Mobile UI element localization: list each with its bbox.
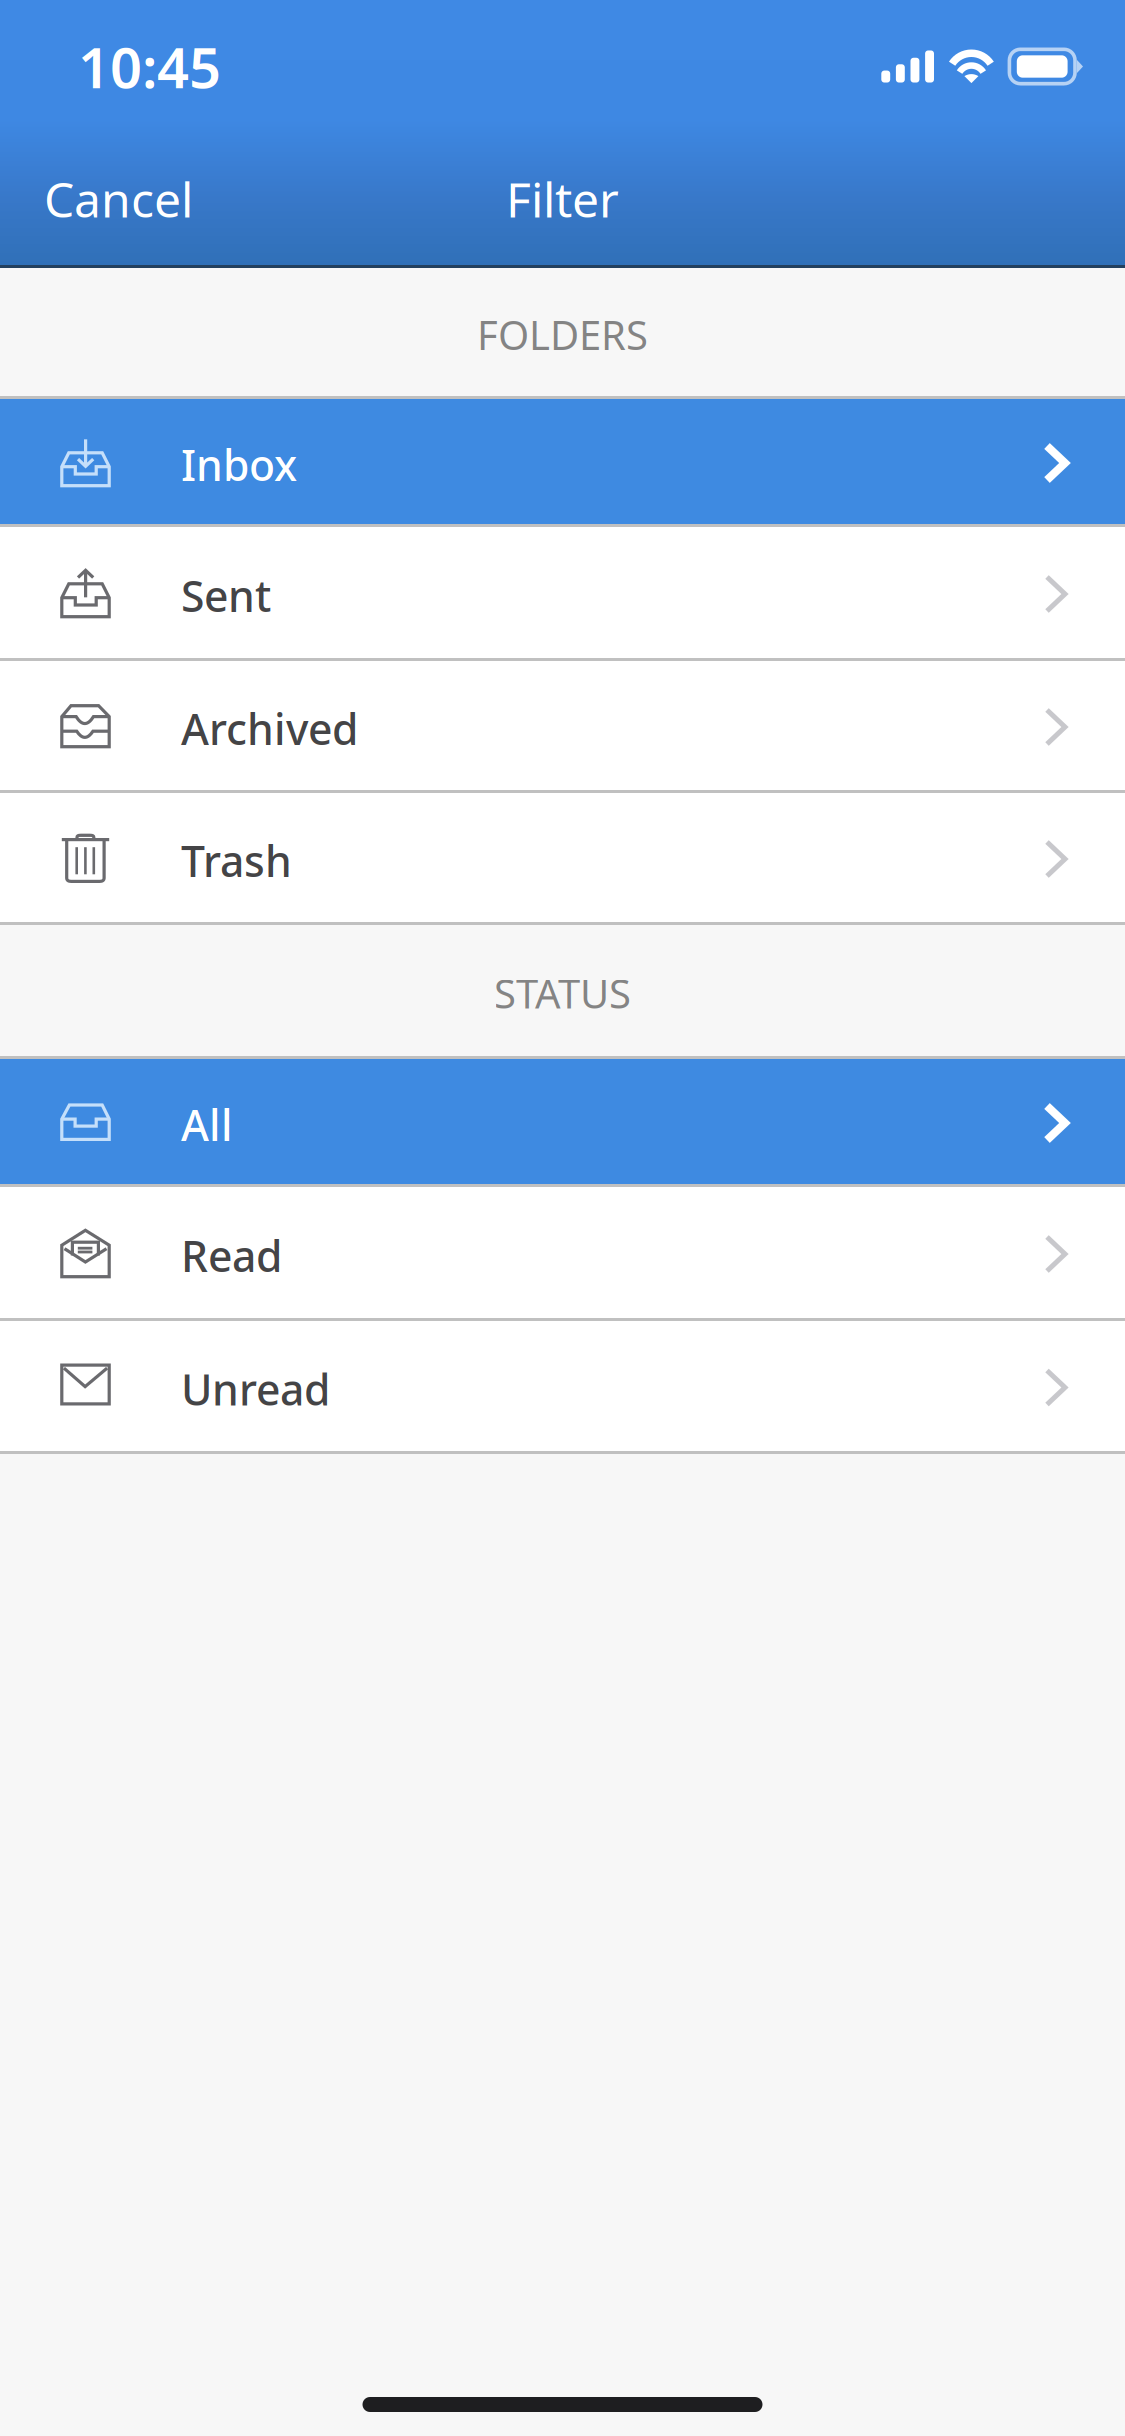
button[interactable]: Cancel	[0, 133, 225, 265]
staticText: Cancel	[44, 167, 193, 231]
staticText: Read	[181, 1227, 282, 1284]
button[interactable]: All	[0, 1059, 1125, 1184]
button[interactable]: Unread	[0, 1321, 1125, 1451]
button[interactable]: Sent	[0, 527, 1125, 658]
staticText: All	[181, 1096, 233, 1153]
staticText: STATUS	[494, 966, 631, 1019]
button[interactable]: Archived	[0, 661, 1125, 790]
staticText: Unread	[181, 1361, 330, 1417]
button[interactable]: Trash	[0, 793, 1125, 922]
staticText: Archived	[181, 700, 358, 757]
staticText: 10:45	[78, 29, 221, 104]
staticText: Filter	[506, 167, 619, 231]
button[interactable]: Inbox	[0, 399, 1125, 524]
staticText: Trash	[181, 832, 292, 889]
staticText: FOLDERS	[477, 308, 648, 361]
staticText: Inbox	[181, 436, 297, 493]
staticText: Sent	[181, 567, 271, 624]
button[interactable]: Read	[0, 1187, 1125, 1318]
